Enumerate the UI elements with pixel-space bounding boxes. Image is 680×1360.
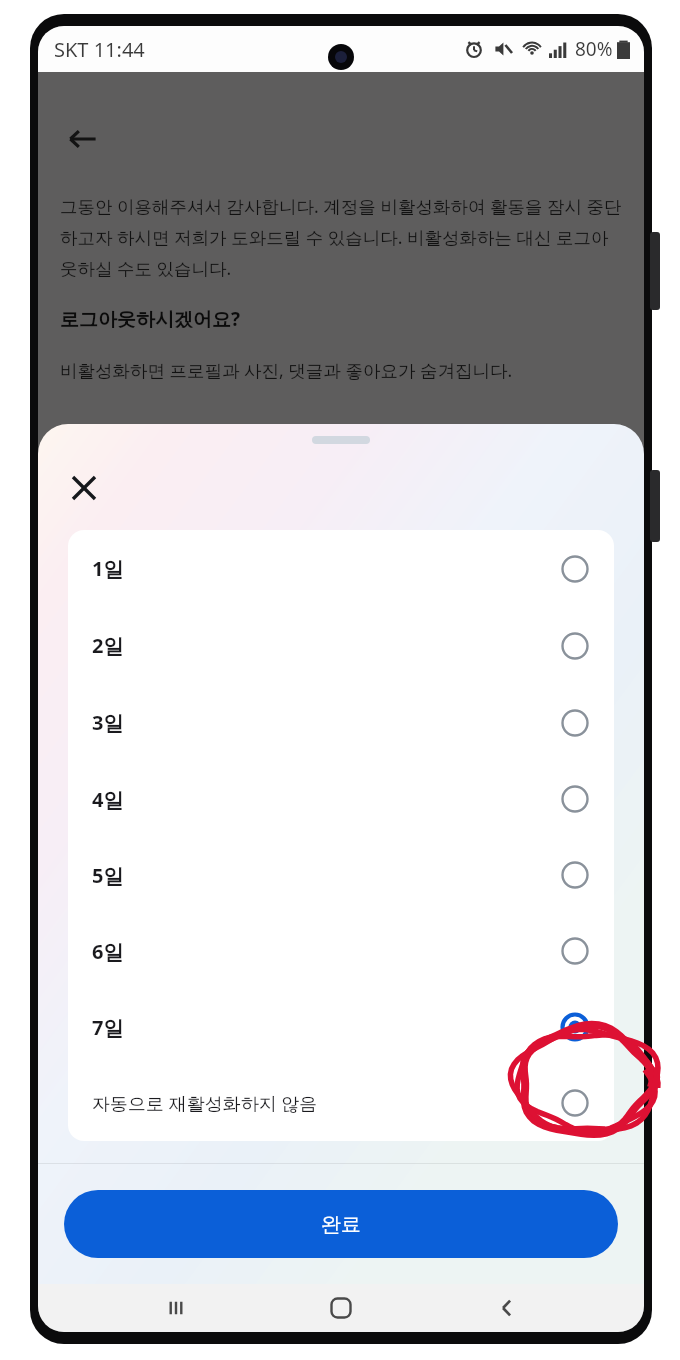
staticText: 완료	[321, 1212, 361, 1237]
staticText: 80%	[575, 36, 613, 62]
button[interactable]: Close	[60, 464, 108, 512]
staticText: 5일	[92, 862, 560, 889]
button[interactable]: Home	[313, 1284, 369, 1332]
button[interactable]: 3일	[68, 684, 614, 761]
staticText: 4일	[92, 786, 560, 813]
button[interactable]: Back	[60, 116, 106, 162]
staticText: 2일	[92, 632, 560, 659]
staticText: 3일	[92, 709, 560, 736]
button[interactable]: 7일	[68, 989, 614, 1065]
button[interactable]: 4일	[68, 761, 614, 837]
button[interactable]: 2일	[68, 607, 614, 684]
button[interactable]: 6일	[68, 913, 614, 989]
staticText: 1일	[92, 555, 560, 582]
staticText: 비활성화하면 프로필과 사진, 댓글과 좋아요가 숨겨집니다.	[60, 358, 622, 382]
button[interactable]: 완료	[64, 1190, 618, 1258]
staticText: 6일	[92, 938, 560, 965]
button[interactable]: Recents	[148, 1284, 204, 1332]
button[interactable]: 자동으로 재활성화하지 않음	[68, 1065, 614, 1141]
staticText: 로그아웃하시겠어요?	[60, 306, 241, 332]
button[interactable]: Back	[479, 1284, 535, 1332]
button[interactable]: 1일	[68, 530, 614, 607]
staticText: 7일	[92, 1014, 560, 1041]
staticText: 자동으로 재활성화하지 않음	[92, 1091, 560, 1116]
staticText: 그동안 이용해주셔서 감사합니다. 계정을 비활성화하여 활동을 잠시 중단하고…	[60, 194, 622, 280]
staticText: SKT 11:44	[54, 36, 145, 63]
button[interactable]: 5일	[68, 837, 614, 913]
